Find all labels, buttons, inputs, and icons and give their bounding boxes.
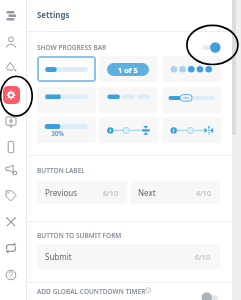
button[interactable]: Pages (2, 7, 20, 25)
staticText: 4/10 (187, 188, 211, 198)
button[interactable] (162, 117, 221, 143)
button[interactable] (162, 87, 221, 113)
button[interactable]: Announcements (2, 161, 20, 179)
button[interactable] (99, 87, 158, 113)
button[interactable]: Help (2, 266, 20, 284)
button[interactable]: Sync (2, 239, 20, 257)
button[interactable]: Submit (37, 244, 220, 269)
button[interactable] (99, 117, 158, 143)
button[interactable]: Settings (2, 86, 20, 104)
button[interactable]: Toggle global countdown timer (201, 292, 219, 300)
staticText: SHOW PROGRESS BAR (37, 43, 107, 52)
button[interactable]: Account (2, 33, 20, 51)
button[interactable] (37, 56, 96, 82)
button[interactable]: Previous (37, 181, 127, 204)
button[interactable] (37, 87, 96, 113)
staticText: Next (138, 187, 156, 198)
button[interactable]: Integrations (2, 213, 20, 231)
staticText: BUTTON TO SUBMIT FORM (37, 231, 122, 240)
button[interactable]: Theme (2, 59, 20, 77)
button[interactable] (162, 56, 221, 82)
staticText: 30% (45, 129, 70, 137)
button[interactable]: 1 of 5 (99, 56, 158, 82)
button[interactable]: Toggle show progress bar (202, 42, 221, 53)
staticText: ADD GLOBAL COUNTDOWN TIMER (37, 287, 146, 296)
button[interactable]: Payments (2, 113, 20, 131)
button[interactable]: Mobile preview (2, 138, 20, 156)
button[interactable]: Tags (2, 187, 20, 205)
staticText: 1 of 5 (118, 65, 138, 75)
button[interactable]: 30% (37, 117, 96, 143)
staticText: 6/10 (186, 252, 210, 262)
staticText: Submit (45, 251, 72, 262)
staticText: BUTTON LABEL (37, 166, 85, 175)
staticText: Settings (37, 10, 70, 21)
staticText: Previous (45, 187, 78, 198)
staticText: 8/10 (94, 188, 118, 198)
button[interactable]: Next (130, 181, 220, 204)
